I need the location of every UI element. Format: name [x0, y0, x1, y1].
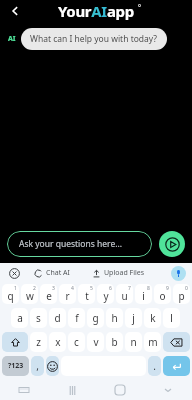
button[interactable]: x — [49, 332, 66, 352]
staticText: 0 — [185, 285, 188, 292]
button[interactable]: Backspace — [163, 332, 190, 352]
button[interactable]: v — [87, 332, 104, 352]
button[interactable]: Chat AI — [34, 268, 70, 278]
button[interactable]: ?123 — [2, 356, 29, 376]
staticText: 6 — [109, 285, 112, 292]
button[interactable]: Ask your questions here... — [7, 231, 152, 257]
button[interactable]: Hide keyboard — [144, 380, 192, 400]
staticText: ?123 — [8, 361, 24, 371]
staticText: s — [36, 311, 41, 325]
staticText: f — [75, 311, 79, 325]
staticText: x — [55, 335, 61, 349]
staticText: q — [7, 289, 14, 303]
staticText: Ask your questions here... — [19, 238, 123, 250]
button[interactable]: Upload Files — [92, 268, 145, 278]
button[interactable]: Back — [4, 0, 26, 22]
staticText: d — [54, 311, 61, 325]
button[interactable]: j — [125, 308, 142, 328]
button[interactable]: Keyboard — [0, 380, 48, 400]
button[interactable]: l — [163, 308, 180, 328]
button[interactable]: , — [31, 356, 44, 376]
button[interactable]: f — [68, 308, 85, 328]
button[interactable]: Recents — [48, 380, 96, 400]
button[interactable]: 8 — [135, 284, 152, 304]
button[interactable]: Enter — [163, 356, 190, 376]
staticText: h — [111, 311, 118, 325]
button[interactable]: 0 — [173, 284, 190, 304]
staticText: u — [121, 289, 128, 303]
staticText: j — [132, 311, 135, 325]
button[interactable]: m — [144, 332, 161, 352]
button[interactable]: Emoji — [46, 356, 59, 376]
staticText: k — [150, 311, 156, 325]
button[interactable]: 7 — [116, 284, 133, 304]
button[interactable]: b — [106, 332, 123, 352]
staticText: AI — [8, 34, 16, 44]
button[interactable]: k — [144, 308, 161, 328]
button[interactable]: a — [11, 308, 28, 328]
staticText: 3 — [52, 285, 55, 292]
staticText: o — [159, 289, 166, 303]
staticText: YourAIapp — [58, 1, 134, 21]
button[interactable]: 1 — [2, 284, 19, 304]
staticText: n — [130, 335, 137, 349]
staticText: b — [111, 335, 118, 349]
button[interactable]: 5 — [78, 284, 95, 304]
button[interactable]: s — [30, 308, 47, 328]
button[interactable]: 4 — [59, 284, 76, 304]
staticText: t — [85, 289, 89, 303]
button[interactable]: Send — [159, 231, 185, 257]
button[interactable]: 2 — [21, 284, 38, 304]
button[interactable]: z — [30, 332, 47, 352]
staticText: v — [93, 335, 99, 349]
button[interactable]: d — [49, 308, 66, 328]
staticText: e — [46, 289, 52, 303]
button[interactable]: Home — [96, 380, 144, 400]
staticText: . — [153, 359, 156, 373]
staticText: Chat AI — [46, 268, 70, 278]
button[interactable]: Voice input — [171, 266, 186, 281]
staticText: r — [65, 289, 70, 303]
button[interactable]: Shift — [2, 332, 28, 352]
staticText: w — [26, 289, 34, 303]
staticText: y — [103, 289, 109, 303]
button[interactable]: 3 — [40, 284, 57, 304]
button[interactable]: 6 — [97, 284, 114, 304]
staticText: 5 — [90, 285, 93, 292]
staticText: What can I help you with today? — [30, 33, 158, 45]
staticText: , — [36, 359, 39, 373]
button[interactable]: Close — [6, 265, 22, 281]
staticText: 7 — [128, 285, 131, 292]
button[interactable]: 9 — [154, 284, 171, 304]
staticText: 2 — [33, 285, 36, 292]
staticText: a — [17, 311, 23, 325]
staticText: 4 — [71, 285, 74, 292]
staticText: ° — [138, 3, 141, 13]
button[interactable]: c — [68, 332, 85, 352]
staticText: p — [178, 289, 185, 303]
staticText: c — [74, 335, 79, 349]
button[interactable]: n — [125, 332, 142, 352]
button[interactable]: h — [106, 308, 123, 328]
button[interactable]: . — [148, 356, 161, 376]
staticText: z — [36, 335, 41, 349]
button[interactable]: g — [87, 308, 104, 328]
staticText: l — [170, 311, 173, 325]
staticText: m — [148, 335, 158, 349]
staticText: i — [142, 289, 145, 303]
staticText: 1 — [14, 285, 17, 292]
staticText: 9 — [166, 285, 169, 292]
button[interactable]: What can I help you with today? — [21, 28, 167, 50]
staticText: g — [92, 311, 99, 325]
staticText: Upload Files — [104, 268, 145, 278]
staticText: 8 — [147, 285, 150, 292]
